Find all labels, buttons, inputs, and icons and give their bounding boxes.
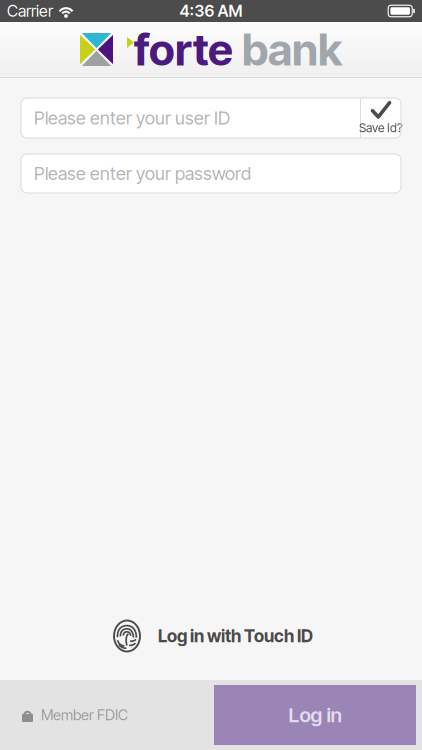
- staticText: 4:36 AM: [179, 1, 242, 21]
- staticText: Please enter your password: [34, 163, 251, 184]
- staticText: bank: [242, 23, 342, 76]
- staticText: Save Id?: [359, 121, 403, 135]
- staticText: Log in: [288, 703, 341, 727]
- staticText: Log in with Touch ID: [158, 625, 313, 646]
- staticText: Member FDIC: [41, 706, 128, 724]
- staticText: forte: [134, 23, 233, 76]
- staticText: Carrier: [7, 1, 53, 21]
- button[interactable]: Save Id?: [361, 98, 401, 138]
- button[interactable]: Log in: [214, 685, 416, 745]
- staticText: Please enter your user ID: [34, 107, 230, 129]
- button[interactable]: Log in with Touch ID: [99, 614, 323, 658]
